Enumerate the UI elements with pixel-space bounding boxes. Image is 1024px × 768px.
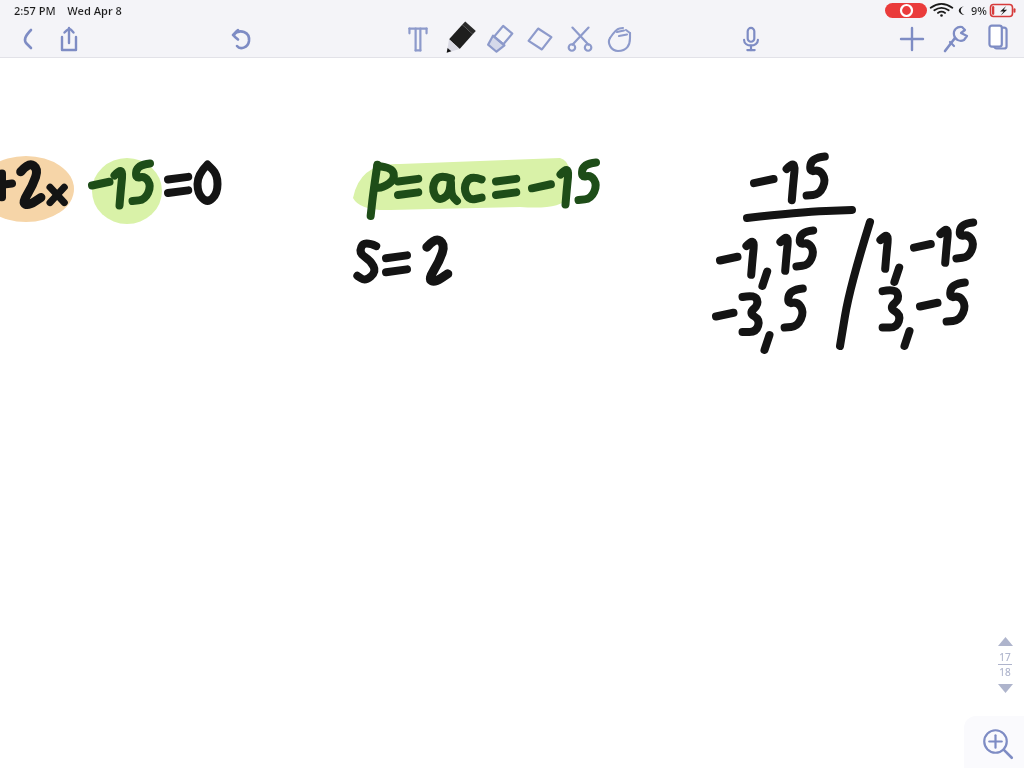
button[interactable]: Back (8, 20, 44, 58)
button[interactable]: Pen tool (438, 20, 480, 58)
button[interactable]: Add (890, 20, 934, 58)
button[interactable]: Undo (221, 20, 261, 58)
button[interactable]: Select tool (600, 20, 640, 58)
button[interactable]: Tools (934, 20, 978, 58)
button[interactable]: Previous page (994, 634, 1016, 648)
button[interactable]: Eraser tool (520, 20, 560, 58)
button[interactable]: Text tool (398, 20, 438, 58)
button[interactable]: Cut tool (560, 20, 600, 58)
button[interactable]: Zoom in (964, 716, 1024, 768)
button[interactable]: Pages (978, 20, 1018, 58)
button[interactable]: Microphone (731, 20, 771, 58)
button[interactable]: Next page (994, 681, 1016, 695)
button[interactable]: Share (51, 20, 87, 58)
button[interactable]: Highlighter tool (480, 20, 520, 58)
button[interactable]: Previous page (992, 634, 1018, 695)
staticText: 2:57 PM Wed Apr 8 (14, 3, 122, 18)
staticText: 18 (999, 665, 1011, 679)
staticText: 17 (999, 650, 1011, 664)
staticText: 9% (971, 3, 987, 18)
